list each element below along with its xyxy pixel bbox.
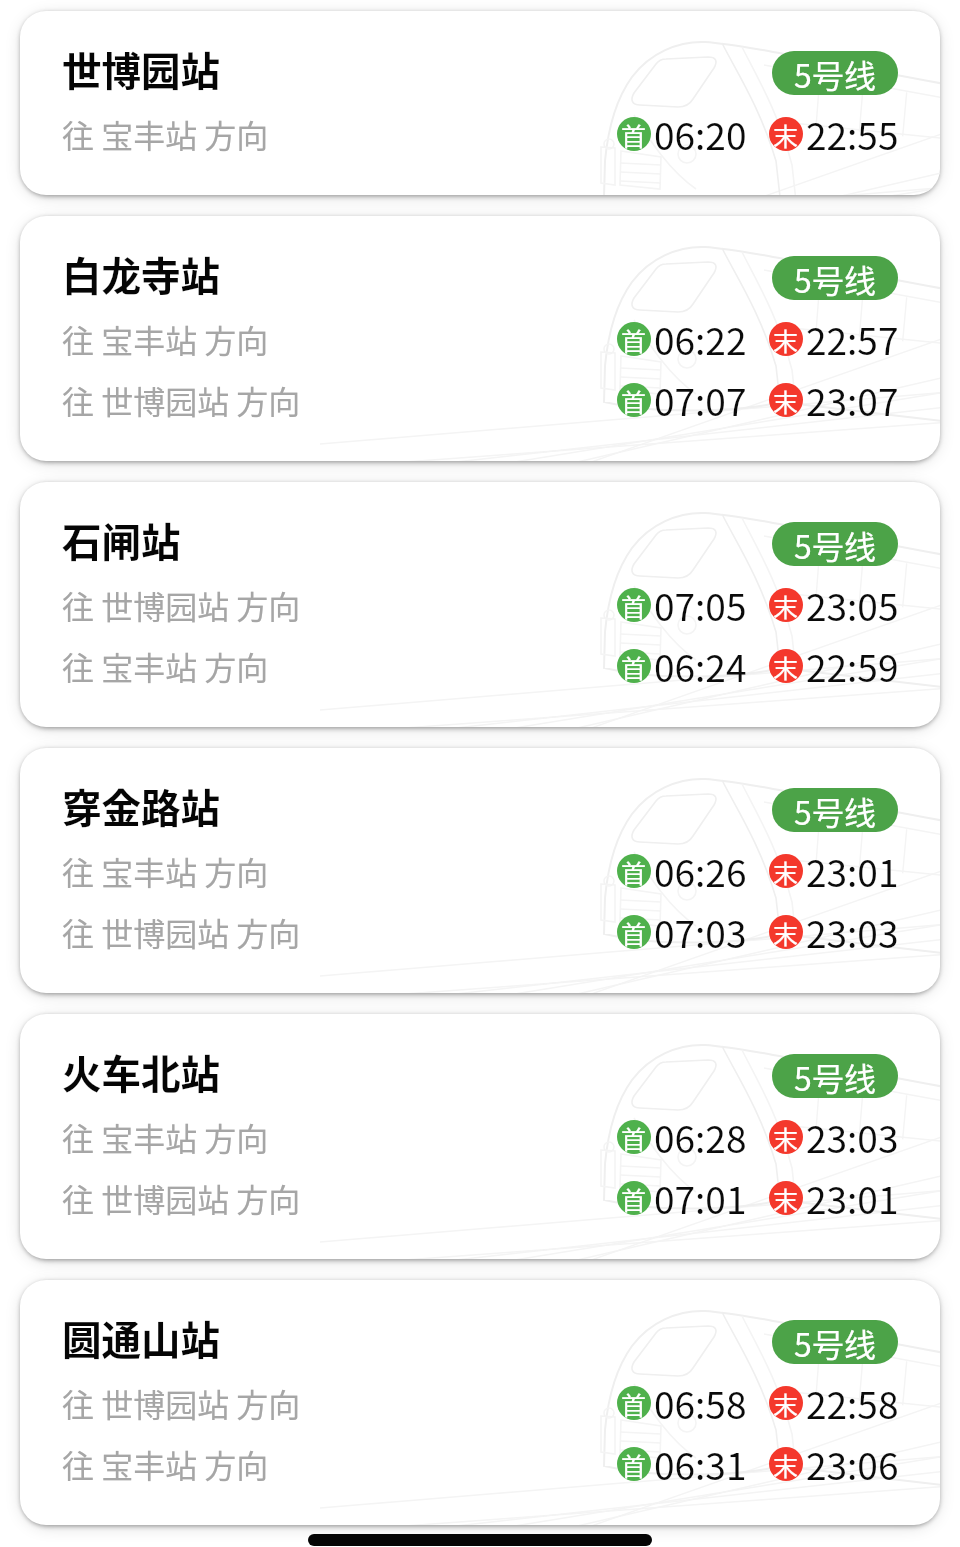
staticText: 5号线	[794, 1054, 876, 1098]
staticText: 5号线	[794, 1320, 876, 1364]
staticText: 末	[773, 1447, 799, 1481]
staticText: 往 宝丰站 方向	[62, 1114, 269, 1160]
button[interactable]: 世博园站	[20, 11, 940, 195]
staticText: 23:07	[806, 373, 899, 427]
staticText: 07:05	[654, 578, 747, 632]
staticText: 首	[621, 915, 647, 949]
staticText: 23:01	[806, 1171, 899, 1225]
staticText: 23:05	[806, 578, 899, 632]
staticText: 末	[773, 854, 799, 888]
staticText: 22:58	[806, 1376, 899, 1430]
button[interactable]: 5号线	[772, 522, 898, 566]
button[interactable]: 穿金路站	[20, 748, 940, 993]
staticText: 首	[621, 1386, 647, 1420]
staticText: 06:22	[654, 312, 747, 366]
staticText: 06:58	[654, 1376, 747, 1430]
staticText: 往 宝丰站 方向	[62, 316, 269, 362]
staticText: 首	[621, 588, 647, 622]
staticText: 5号线	[794, 51, 876, 95]
staticText: 5号线	[794, 256, 876, 300]
staticText: 07:07	[654, 373, 747, 427]
staticText: 06:24	[654, 639, 747, 693]
staticText: 末	[773, 1120, 799, 1154]
staticText: 世博园站	[62, 40, 220, 97]
staticText: 5号线	[794, 788, 876, 832]
staticText: 白龙寺站	[62, 245, 220, 302]
staticText: 往 世博园站 方向	[62, 1380, 301, 1426]
staticText: 07:01	[654, 1171, 747, 1225]
staticText: 07:03	[654, 905, 747, 959]
staticText: 石闸站	[62, 511, 181, 568]
button[interactable]: 5号线	[772, 1320, 898, 1364]
staticText: 往 宝丰站 方向	[62, 111, 269, 157]
staticText: 23:03	[806, 905, 899, 959]
staticText: 往 世博园站 方向	[62, 1175, 301, 1221]
staticText: 火车北站	[62, 1043, 220, 1100]
staticText: 06:28	[654, 1110, 747, 1164]
staticText: 23:03	[806, 1110, 899, 1164]
staticText: 末	[773, 1181, 799, 1215]
button[interactable]: 石闸站	[20, 482, 940, 727]
staticText: 首	[621, 649, 647, 683]
staticText: 末	[773, 1386, 799, 1420]
staticText: 往 世博园站 方向	[62, 582, 301, 628]
staticText: 5号线	[794, 522, 876, 566]
staticText: 往 世博园站 方向	[62, 909, 301, 955]
staticText: 末	[773, 322, 799, 356]
staticText: 往 宝丰站 方向	[62, 848, 269, 894]
button[interactable]: 5号线	[772, 51, 898, 95]
staticText: 06:20	[654, 107, 747, 161]
staticText: 末	[773, 649, 799, 683]
button[interactable]: 5号线	[772, 1054, 898, 1098]
staticText: 06:31	[654, 1437, 747, 1491]
staticText: 首	[621, 1447, 647, 1481]
button[interactable]: 5号线	[772, 256, 898, 300]
staticText: 圆通山站	[62, 1309, 220, 1366]
button[interactable]: 白龙寺站	[20, 216, 940, 461]
staticText: 首	[621, 383, 647, 417]
staticText: 首	[621, 322, 647, 356]
staticText: 22:57	[806, 312, 899, 366]
staticText: 23:06	[806, 1437, 899, 1491]
staticText: 首	[621, 117, 647, 151]
staticText: 末	[773, 117, 799, 151]
staticText: 首	[621, 1181, 647, 1215]
button[interactable]: 火车北站	[20, 1014, 940, 1259]
button[interactable]: 5号线	[772, 788, 898, 832]
staticText: 22:55	[806, 107, 899, 161]
staticText: 23:01	[806, 844, 899, 898]
staticText: 末	[773, 915, 799, 949]
staticText: 首	[621, 1120, 647, 1154]
staticText: 末	[773, 383, 799, 417]
staticText: 往 宝丰站 方向	[62, 1441, 269, 1487]
staticText: 往 世博园站 方向	[62, 377, 301, 423]
staticText: 22:59	[806, 639, 899, 693]
staticText: 06:26	[654, 844, 747, 898]
button[interactable]: 圆通山站	[20, 1280, 940, 1525]
staticText: 首	[621, 854, 647, 888]
staticText: 末	[773, 588, 799, 622]
staticText: 往 宝丰站 方向	[62, 643, 269, 689]
staticText: 穿金路站	[62, 777, 220, 834]
